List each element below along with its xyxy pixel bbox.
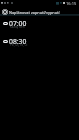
staticText: Naplánovat zapnutí/vypnutí xyxy=(9,10,60,15)
button[interactable]: Toggle schedule xyxy=(0,34,79,52)
button[interactable]: Toggle schedule xyxy=(0,16,79,34)
staticText: Po, Út, St, Čt xyxy=(10,43,28,47)
button[interactable]: Settings xyxy=(1,8,9,15)
staticText: Každý den xyxy=(10,25,25,29)
button[interactable]: Toggle schedule xyxy=(3,40,8,43)
staticText: 07:00 xyxy=(9,19,27,28)
button[interactable]: Toggle schedule xyxy=(3,22,8,25)
staticText: 08:30 xyxy=(9,37,27,46)
staticText: 16:15 xyxy=(66,1,77,6)
